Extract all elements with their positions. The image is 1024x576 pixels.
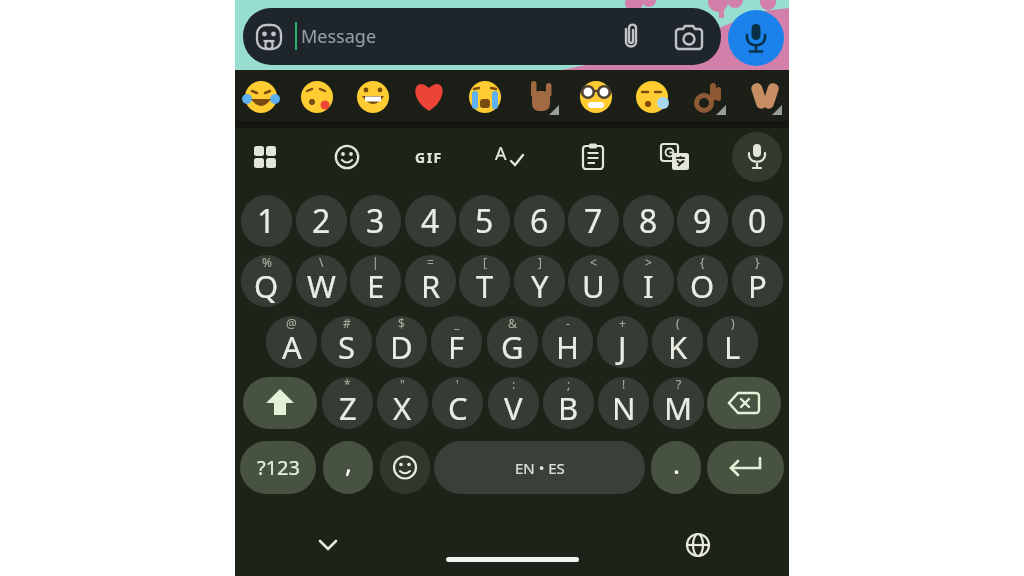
button[interactable] xyxy=(690,79,726,115)
staticText: P xyxy=(748,265,767,307)
staticText: ?123 xyxy=(257,454,300,481)
staticText: ( xyxy=(676,316,680,331)
staticText: = xyxy=(427,255,434,270)
staticText: ! xyxy=(622,377,626,392)
button[interactable] xyxy=(728,10,784,66)
button[interactable] xyxy=(634,79,670,115)
staticText: D xyxy=(390,326,413,368)
button[interactable] xyxy=(355,79,391,115)
button[interactable] xyxy=(446,557,579,562)
button[interactable]: [ xyxy=(459,255,510,307)
button[interactable]: _ xyxy=(431,316,482,368)
button[interactable]: 6 xyxy=(514,195,565,247)
button[interactable]: 8 xyxy=(623,195,674,247)
staticText: EN • ES xyxy=(515,458,565,478)
button[interactable] xyxy=(243,79,279,115)
button[interactable]: 5 xyxy=(459,195,510,247)
staticText: G xyxy=(501,326,524,368)
staticText: | xyxy=(372,255,379,270)
button[interactable] xyxy=(467,79,503,115)
button[interactable]: 4 xyxy=(405,195,456,247)
button[interactable]: > xyxy=(623,255,674,307)
staticText: 5 xyxy=(475,199,494,243)
button[interactable] xyxy=(380,441,430,494)
button[interactable] xyxy=(746,79,782,115)
staticText: \ xyxy=(319,255,324,270)
button[interactable]: 3 xyxy=(350,195,401,247)
staticText: 9 xyxy=(693,199,712,243)
button[interactable]: " xyxy=(377,377,428,429)
button[interactable]: 9 xyxy=(677,195,728,247)
staticText: B xyxy=(558,387,579,429)
button[interactable]: ?123 xyxy=(240,441,316,494)
button[interactable]: A xyxy=(495,143,527,171)
button[interactable]: ) xyxy=(707,316,758,368)
button[interactable] xyxy=(316,538,340,552)
button[interactable] xyxy=(252,144,278,170)
staticText: 0 xyxy=(748,199,767,243)
button[interactable]: ; xyxy=(543,377,594,429)
staticText: @ xyxy=(286,316,297,331)
button[interactable]: | xyxy=(350,255,401,307)
button[interactable]: $ xyxy=(376,316,427,368)
button[interactable] xyxy=(523,79,559,115)
button[interactable]: * xyxy=(322,377,373,429)
button[interactable]: 7 xyxy=(568,195,619,247)
staticText: 1 xyxy=(257,199,276,243)
button[interactable]: ! xyxy=(598,377,649,429)
button[interactable] xyxy=(243,8,721,65)
button[interactable]: 1 xyxy=(241,195,292,247)
staticText: F xyxy=(448,326,465,368)
button[interactable] xyxy=(618,22,644,52)
button[interactable]: + xyxy=(597,316,648,368)
button[interactable]: EN • ES xyxy=(434,441,645,494)
staticText: [ xyxy=(483,255,487,270)
button[interactable]: & xyxy=(487,316,538,368)
button[interactable]: ? xyxy=(653,377,704,429)
button[interactable]: < xyxy=(568,255,619,307)
button[interactable]: @ xyxy=(266,316,317,368)
button[interactable] xyxy=(411,79,447,115)
staticText: W xyxy=(307,265,336,307)
button[interactable]: , xyxy=(323,441,373,494)
button[interactable]: : xyxy=(488,377,539,429)
button[interactable] xyxy=(707,441,784,494)
button[interactable]: - xyxy=(542,316,593,368)
staticText: " xyxy=(400,377,405,392)
button[interactable] xyxy=(581,143,605,171)
staticText: < xyxy=(590,255,597,270)
button[interactable]: { xyxy=(677,255,728,307)
button[interactable]: ' xyxy=(432,377,483,429)
staticText: 6 xyxy=(530,199,549,243)
staticText: M xyxy=(664,387,693,429)
button[interactable] xyxy=(732,132,782,182)
button[interactable] xyxy=(243,377,317,429)
button[interactable]: ] xyxy=(514,255,565,307)
button[interactable] xyxy=(707,377,781,429)
button[interactable] xyxy=(685,532,711,558)
staticText: 3 xyxy=(366,199,385,243)
staticText: - xyxy=(566,316,570,331)
button[interactable]: . xyxy=(651,441,701,494)
button[interactable] xyxy=(674,24,704,50)
button[interactable]: \ xyxy=(296,255,347,307)
button[interactable] xyxy=(578,79,614,115)
staticText: C xyxy=(448,387,468,429)
staticText: + xyxy=(619,316,626,331)
button[interactable]: } xyxy=(732,255,783,307)
button[interactable]: % xyxy=(241,255,292,307)
staticText: S xyxy=(338,326,356,368)
button[interactable] xyxy=(334,144,360,170)
staticText: GIF xyxy=(415,148,443,167)
button[interactable] xyxy=(255,23,283,51)
button[interactable]: ( xyxy=(652,316,703,368)
button[interactable]: 0 xyxy=(732,195,783,247)
button[interactable]: = xyxy=(405,255,456,307)
button[interactable]: GIF xyxy=(407,145,451,169)
button[interactable] xyxy=(660,143,690,171)
button[interactable]: 2 xyxy=(296,195,347,247)
button[interactable] xyxy=(299,79,335,115)
staticText: & xyxy=(508,316,517,331)
staticText: ) xyxy=(731,316,735,331)
button[interactable]: # xyxy=(321,316,372,368)
